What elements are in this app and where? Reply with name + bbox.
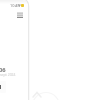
button[interactable]: 06 bbox=[0, 66, 6, 73]
button[interactable] bbox=[0, 81, 6, 93]
staticText: 10:35 bbox=[10, 3, 20, 8]
staticText: 06 bbox=[0, 66, 6, 73]
staticText: sept 2024 bbox=[0, 72, 16, 77]
button[interactable] bbox=[17, 12, 23, 18]
staticText: 06 bbox=[0, 66, 6, 73]
other: Battery bbox=[21, 4, 24, 7]
